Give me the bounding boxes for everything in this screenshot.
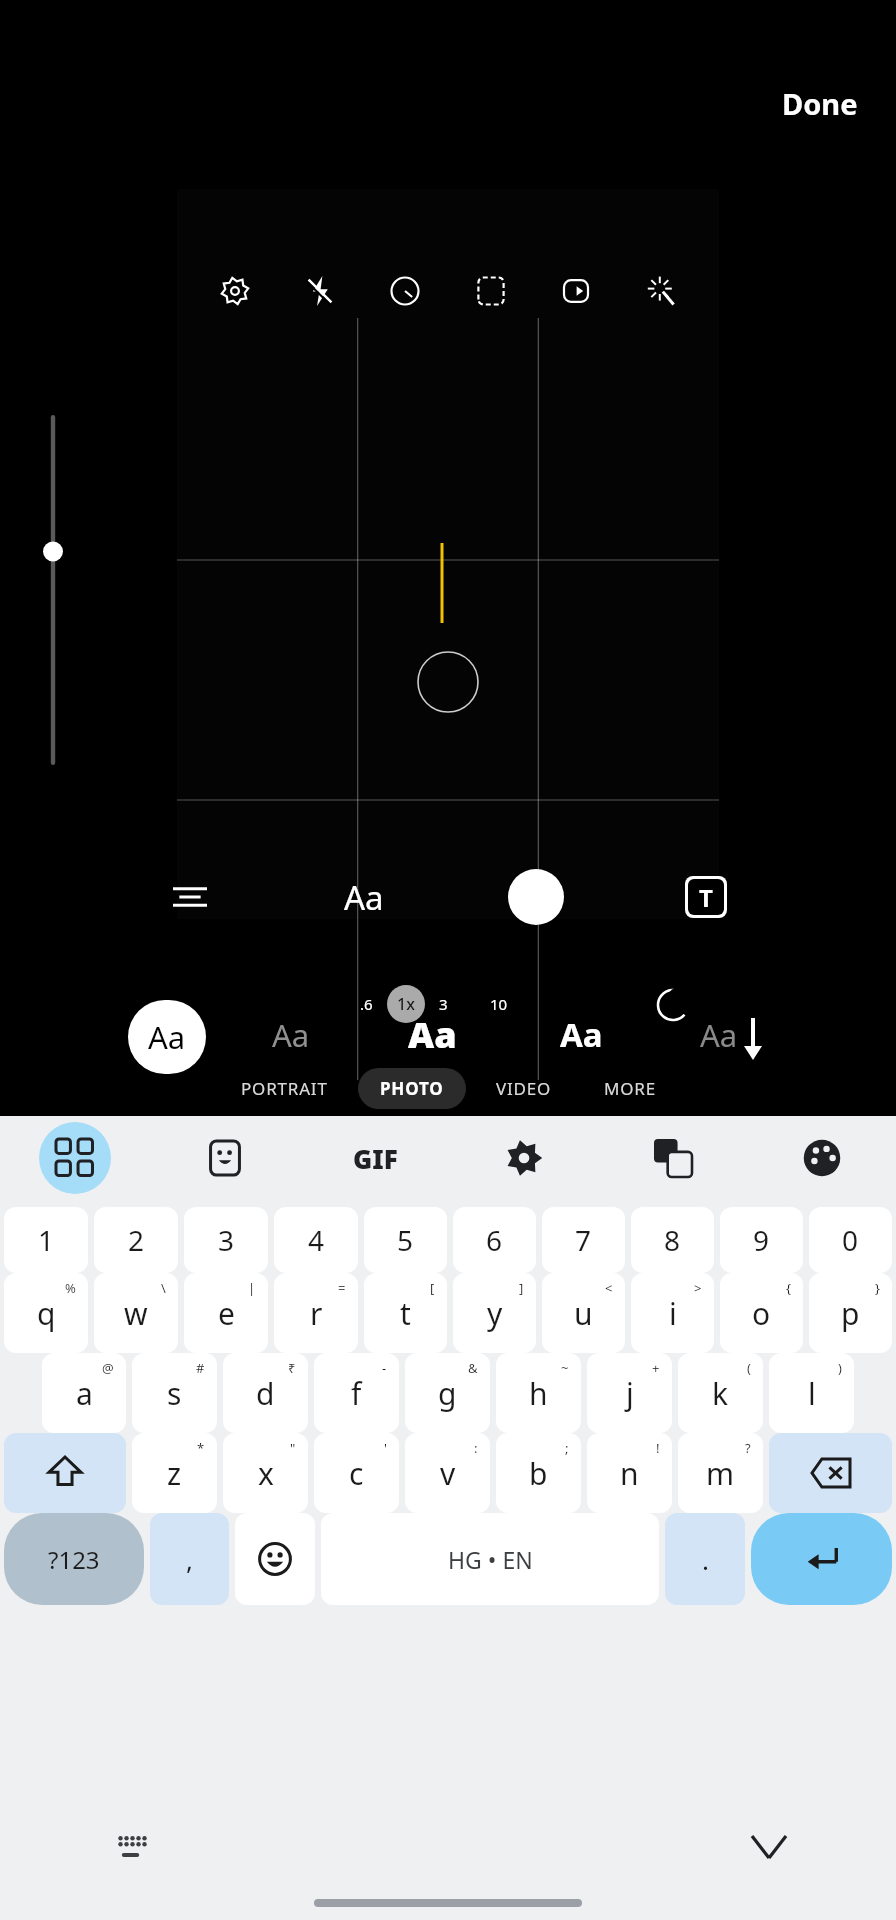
button[interactable]: w xyxy=(94,1273,178,1353)
button[interactable]: j xyxy=(587,1353,672,1433)
button[interactable]: Aspect ratio 3:4 xyxy=(464,264,518,318)
button[interactable]: o xyxy=(720,1273,803,1353)
button[interactable]: Flash off xyxy=(293,264,347,318)
button[interactable]: t xyxy=(364,1273,447,1353)
button[interactable]: . xyxy=(665,1513,745,1605)
staticText: q xyxy=(37,1293,56,1334)
staticText: Aa xyxy=(700,1014,738,1056)
button[interactable]: Backspace xyxy=(769,1433,892,1513)
button[interactable]: HG • EN xyxy=(321,1513,659,1605)
staticText: PHOTO xyxy=(380,1077,444,1100)
button[interactable]: MORE xyxy=(582,1068,678,1109)
button[interactable]: 3 xyxy=(184,1207,268,1273)
staticText: y xyxy=(487,1293,503,1334)
button[interactable]: d xyxy=(223,1353,308,1433)
button[interactable]: 2 xyxy=(94,1207,178,1273)
staticText: 9 xyxy=(753,1221,770,1259)
button[interactable]: 7 xyxy=(542,1207,625,1273)
staticText: - xyxy=(382,1359,387,1377)
staticText: k xyxy=(712,1373,729,1414)
button[interactable]: b xyxy=(496,1433,581,1513)
button[interactable]: r xyxy=(274,1273,358,1353)
button[interactable]: Shift xyxy=(4,1433,126,1513)
button[interactable]: Aa xyxy=(272,1014,310,1056)
button[interactable]: g xyxy=(405,1353,490,1433)
button[interactable]: Aa xyxy=(560,1012,603,1057)
staticText: 3 xyxy=(218,1221,235,1259)
button[interactable]: h xyxy=(496,1353,581,1433)
button[interactable]: GIF xyxy=(300,1116,449,1199)
staticText: f xyxy=(351,1373,362,1414)
button[interactable]: v xyxy=(405,1433,490,1513)
staticText: 10 xyxy=(490,994,508,1014)
staticText: \ xyxy=(161,1279,166,1297)
button[interactable]: Toolbox xyxy=(0,1116,150,1199)
button[interactable]: f xyxy=(314,1353,399,1433)
button[interactable]: 4 xyxy=(274,1207,358,1273)
button[interactable]: Timer xyxy=(378,264,432,318)
button[interactable]: 8 xyxy=(631,1207,714,1273)
staticText: b xyxy=(529,1453,548,1494)
button[interactable]: Keyboard layout xyxy=(110,1825,154,1869)
button[interactable]: Themes xyxy=(747,1116,896,1199)
staticText: 1x xyxy=(397,993,415,1015)
button[interactable]: l xyxy=(769,1353,854,1433)
button[interactable]: Hide keyboard xyxy=(742,1820,796,1874)
button[interactable]: Aa xyxy=(128,1000,206,1074)
button[interactable]: 1x xyxy=(387,985,425,1023)
staticText: ] xyxy=(519,1279,524,1297)
button[interactable]: z xyxy=(132,1433,217,1513)
staticText: x xyxy=(258,1453,274,1494)
button[interactable]: e xyxy=(184,1273,268,1353)
button[interactable]: Settings xyxy=(449,1116,598,1199)
button[interactable]: p xyxy=(809,1273,892,1353)
button[interactable]: Emoji xyxy=(235,1513,315,1605)
button[interactable]: Translate xyxy=(598,1116,747,1199)
button[interactable]: Enter xyxy=(751,1513,892,1605)
button[interactable]: Stickers xyxy=(150,1116,300,1199)
button[interactable]: i xyxy=(631,1273,714,1353)
button[interactable]: a xyxy=(42,1353,126,1433)
button[interactable]: s xyxy=(132,1353,217,1433)
button[interactable]: Settings xyxy=(208,264,262,318)
button[interactable]: n xyxy=(587,1433,672,1513)
button[interactable]: Aa xyxy=(408,1010,457,1059)
button[interactable]: PORTRAIT xyxy=(219,1068,350,1109)
button[interactable]: m xyxy=(678,1433,763,1513)
staticText: w xyxy=(124,1293,148,1334)
staticText: VIDEO xyxy=(496,1077,552,1100)
staticText: Aa xyxy=(408,1010,457,1059)
button[interactable]: ?123 xyxy=(4,1513,144,1605)
staticText: 8 xyxy=(664,1221,681,1259)
staticText: g xyxy=(438,1373,457,1414)
button[interactable]: y xyxy=(453,1273,536,1353)
button[interactable]: q xyxy=(4,1273,88,1353)
button[interactable]: Aa xyxy=(332,865,396,929)
staticText: u xyxy=(574,1293,593,1334)
button[interactable]: Align xyxy=(160,867,220,927)
staticText: Aa xyxy=(560,1012,603,1057)
button[interactable]: 6 xyxy=(453,1207,536,1273)
staticText: m xyxy=(706,1453,735,1494)
button[interactable]: Effects xyxy=(634,264,688,318)
staticText: < xyxy=(605,1279,613,1297)
staticText: z xyxy=(167,1453,182,1494)
button[interactable]: Color xyxy=(508,869,564,925)
button[interactable]: 0 xyxy=(809,1207,892,1273)
button[interactable]: VIDEO xyxy=(474,1068,574,1109)
staticText: l xyxy=(808,1373,816,1414)
button[interactable]: Done xyxy=(772,78,868,129)
button[interactable]: c xyxy=(314,1433,399,1513)
button[interactable]: 5 xyxy=(364,1207,447,1273)
button[interactable]: Text box xyxy=(676,867,736,927)
button[interactable]: 9 xyxy=(720,1207,803,1273)
button[interactable]: Aa xyxy=(700,1014,738,1056)
button[interactable]: k xyxy=(678,1353,763,1433)
button[interactable]: , xyxy=(150,1513,229,1605)
button[interactable]: u xyxy=(542,1273,625,1353)
button[interactable]: 1 xyxy=(4,1207,88,1273)
staticText: T xyxy=(699,881,713,914)
button[interactable]: Motion photo xyxy=(549,264,603,318)
button[interactable]: x xyxy=(223,1433,308,1513)
button[interactable]: PHOTO xyxy=(358,1068,466,1109)
